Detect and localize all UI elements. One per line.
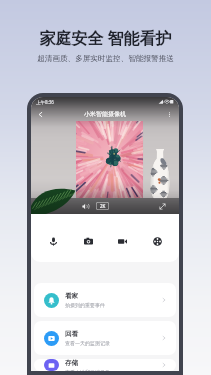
- button[interactable]: Take photo: [78, 231, 98, 251]
- button[interactable]: Record video: [112, 231, 132, 251]
- staticText: 家庭安全 智能看护: [39, 27, 172, 49]
- button[interactable]: Back: [35, 109, 46, 120]
- staticText: 回看: [65, 330, 78, 338]
- button[interactable]: Microphone: [43, 231, 63, 251]
- staticText: 查看本地和云端录像: [65, 369, 110, 371]
- button[interactable]: 存储: [34, 359, 176, 371]
- staticText: 看家: [65, 292, 78, 300]
- staticText: 查看一天的监测记录: [65, 340, 110, 346]
- button[interactable]: 回看: [34, 321, 176, 355]
- button[interactable]: More: [147, 231, 167, 251]
- button[interactable]: Sound: [78, 199, 92, 213]
- button[interactable]: More options: [164, 109, 175, 120]
- staticText: 存储: [65, 359, 78, 367]
- button[interactable]: 看家: [34, 283, 176, 317]
- staticText: 2K: [100, 203, 106, 209]
- staticText: 小米智能摄像机: [84, 110, 126, 118]
- button[interactable]: Quality 2K: [96, 202, 109, 210]
- staticText: 超清画质、多屏实时监控、智能报警推送: [37, 54, 174, 64]
- button[interactable]: Fullscreen: [155, 199, 169, 213]
- staticText: 拍摄到的重要事件: [65, 302, 105, 308]
- staticText: 上午8:36: [36, 99, 54, 105]
